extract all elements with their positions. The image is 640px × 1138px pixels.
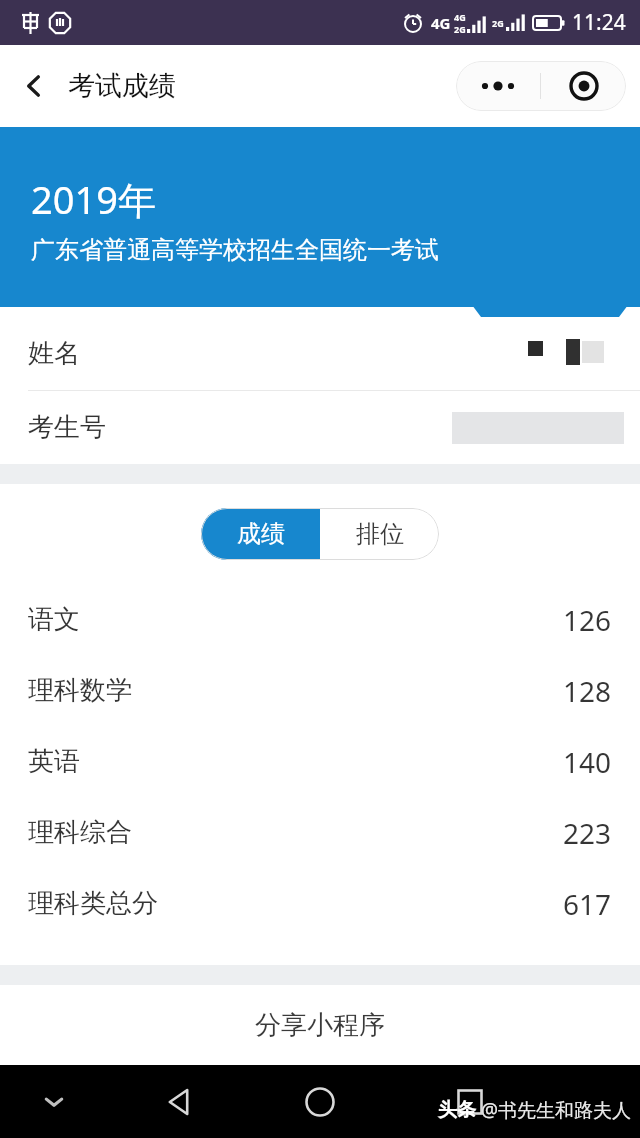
staticText: 126 <box>563 601 612 639</box>
staticText: 2019年 <box>31 173 156 225</box>
staticText: 英语 <box>28 745 80 778</box>
staticText: 理科综合 <box>28 816 132 849</box>
staticText: 11:24 <box>572 8 626 37</box>
button[interactable]: 语文 <box>0 584 640 655</box>
button[interactable]: Hide keyboard <box>26 1074 82 1130</box>
staticText: 广东省普通高等学校招生全国统一考试 <box>31 235 439 265</box>
button[interactable]: 理科数学 <box>0 655 640 726</box>
button[interactable]: 理科综合 <box>0 797 640 868</box>
staticText: 128 <box>563 672 612 710</box>
staticText: 语文 <box>28 603 80 636</box>
staticText: 姓名 <box>28 337 80 370</box>
staticText: 考生号 <box>28 411 106 444</box>
button[interactable]: Back <box>148 1070 212 1134</box>
staticText: 理科类总分 <box>28 887 158 920</box>
button[interactable]: Recent apps <box>438 1070 502 1134</box>
staticText: 617 <box>563 885 612 923</box>
staticText: 4G <box>454 11 466 23</box>
button[interactable]: 英语 <box>0 726 640 797</box>
staticText: @书先生和路夫人 <box>481 1097 632 1123</box>
staticText: 140 <box>563 743 612 781</box>
button[interactable]: 排位 <box>320 508 439 560</box>
staticText: 头条 <box>438 1098 476 1122</box>
button[interactable]: Close mini program <box>541 61 626 111</box>
button[interactable]: 成绩 <box>201 508 320 560</box>
staticText: 分享小程序 <box>255 1009 385 1042</box>
staticText: 4G <box>431 13 451 33</box>
button[interactable]: 姓名 <box>0 317 640 390</box>
button[interactable]: 理科类总分 <box>0 868 640 939</box>
button[interactable]: Home <box>288 1070 352 1134</box>
button[interactable]: Back <box>12 64 56 108</box>
staticText: 2G <box>454 23 466 35</box>
staticText: 排位 <box>356 519 404 549</box>
staticText: 223 <box>563 814 612 852</box>
button[interactable]: 考生号 <box>0 391 640 464</box>
button[interactable]: More <box>456 61 540 111</box>
staticText: 理科数学 <box>28 674 132 707</box>
staticText: 考试成绩 <box>68 69 176 103</box>
staticText: 成绩 <box>237 519 285 549</box>
button[interactable]: 分享小程序 <box>0 985 640 1065</box>
staticText: 2G <box>492 17 504 29</box>
